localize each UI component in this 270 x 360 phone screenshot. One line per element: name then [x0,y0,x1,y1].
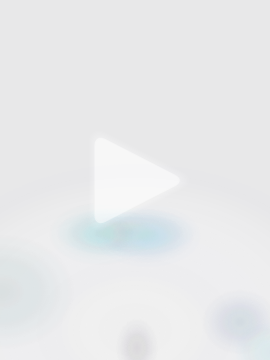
button[interactable]: Play [0,0,270,360]
